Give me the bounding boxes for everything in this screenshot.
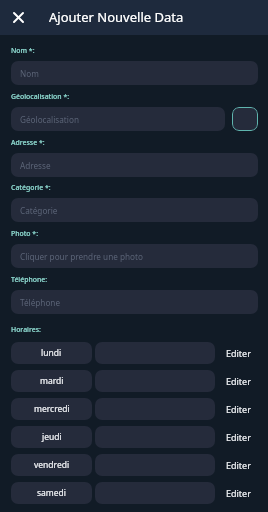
staticText: Téléphone	[20, 297, 61, 308]
button[interactable]: Close	[0, 0, 36, 35]
staticText: Cliquer pour prendre une photo	[20, 251, 143, 262]
staticText: mercredi	[34, 403, 70, 415]
button[interactable]: mercredi	[11, 398, 92, 420]
button[interactable]: Editer	[222, 342, 255, 364]
staticText: Ajouter Nouvelle Data	[49, 8, 184, 26]
staticText: Photo *:	[11, 229, 39, 238]
staticText: Horaires:	[11, 325, 41, 334]
button[interactable]: Catégorie	[11, 198, 258, 222]
staticText: Editer	[226, 403, 251, 415]
button[interactable]: samedi	[11, 482, 92, 504]
button[interactable]: Localiser	[232, 107, 258, 131]
staticText: Téléphone:	[11, 275, 48, 284]
staticText: Editer	[226, 375, 251, 387]
staticText: Editer	[226, 347, 251, 359]
staticText: Géolocalisation *:	[11, 92, 70, 101]
staticText: Catégorie	[20, 205, 58, 216]
staticText: lundi	[41, 347, 62, 359]
button[interactable]: Editer	[222, 454, 255, 476]
button[interactable]: Editer	[222, 482, 255, 504]
staticText: Nom *:	[11, 46, 35, 55]
button[interactable]: Editer	[222, 426, 255, 448]
staticText: Nom	[20, 68, 39, 79]
staticText: Editer	[226, 431, 251, 443]
button[interactable]: Téléphone	[11, 290, 258, 314]
staticText: Editer	[226, 487, 251, 499]
staticText: Adresse *:	[11, 138, 45, 147]
button[interactable]: vendredi	[11, 454, 92, 476]
staticText: mardi	[40, 375, 64, 387]
staticText: Editer	[226, 459, 251, 471]
staticText: jeudi	[42, 431, 62, 443]
button[interactable]: Nom	[11, 61, 258, 85]
button[interactable]: Géolocalisation	[11, 107, 225, 131]
button[interactable]: lundi	[11, 342, 92, 364]
button[interactable]: jeudi	[11, 426, 92, 448]
staticText: Catégorie *:	[11, 183, 51, 192]
button[interactable]: Editer	[222, 398, 255, 420]
button[interactable]: Adresse	[11, 153, 258, 177]
staticText: vendredi	[34, 459, 70, 471]
button[interactable]: Cliquer pour prendre une photo	[11, 244, 258, 268]
staticText: samedi	[37, 487, 67, 499]
button[interactable]: Editer	[222, 370, 255, 392]
button[interactable]: mardi	[11, 370, 92, 392]
staticText: Géolocalisation	[20, 114, 79, 125]
staticText: Adresse	[20, 160, 51, 171]
